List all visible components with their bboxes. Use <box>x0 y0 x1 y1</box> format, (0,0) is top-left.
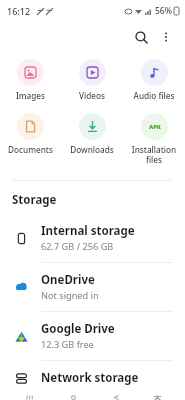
staticText: Installation files <box>123 144 185 165</box>
button[interactable]: Home <box>60 395 86 400</box>
staticText: Audio files <box>123 90 185 101</box>
button[interactable]: Internal storage <box>0 214 185 262</box>
staticText: Downloads <box>61 144 123 155</box>
button[interactable]: Network storage <box>0 361 185 395</box>
staticText: 16:12 <box>7 5 31 17</box>
button[interactable]: APK <box>123 110 185 168</box>
button[interactable]: Recents <box>17 395 43 400</box>
button[interactable]: Google Drive <box>0 312 185 360</box>
staticText: OneDrive <box>41 272 95 288</box>
button[interactable]: Videos <box>61 56 123 104</box>
button[interactable]: More options <box>154 25 178 49</box>
staticText: Images <box>0 90 61 101</box>
button[interactable]: Accessibility <box>146 395 168 400</box>
staticText: Google Drive <box>41 321 115 337</box>
staticText: Storage <box>12 192 57 208</box>
staticText: 62.7 GB / 256 GB <box>41 240 114 253</box>
staticText: Network storage <box>41 370 139 386</box>
staticText: Documents <box>0 144 61 155</box>
button[interactable]: OneDrive <box>0 263 185 311</box>
button[interactable]: Images <box>0 56 61 104</box>
staticText: Not signed in <box>41 289 99 302</box>
staticText: APK <box>149 123 161 131</box>
button[interactable]: Downloads <box>61 110 123 158</box>
button[interactable]: Back <box>103 395 129 400</box>
staticText: 56% <box>155 5 172 17</box>
button[interactable]: Audio files <box>123 56 185 104</box>
staticText: Internal storage <box>41 223 135 239</box>
button[interactable]: Documents <box>0 110 61 158</box>
staticText: 12.3 GB free <box>41 338 94 351</box>
staticText: Videos <box>61 90 123 101</box>
button[interactable]: Search <box>128 24 154 50</box>
